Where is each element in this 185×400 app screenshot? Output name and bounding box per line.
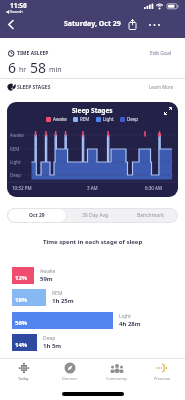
button[interactable]: Today — [0, 362, 47, 400]
staticText: Discover — [62, 376, 78, 381]
button[interactable]: 30 Day Avg — [67, 208, 123, 223]
staticText: 56% — [15, 319, 28, 327]
button[interactable]: 14% — [12, 334, 37, 351]
staticText: Deep — [127, 116, 139, 122]
staticText: 59m — [40, 275, 53, 283]
button[interactable]: Learn More — [149, 84, 174, 90]
button[interactable]: 12% — [12, 267, 34, 284]
staticText: 11:56 — [10, 1, 27, 10]
staticText: Light — [10, 159, 21, 165]
staticText: min — [49, 65, 62, 75]
staticText: 6 — [8, 58, 17, 77]
staticText: Community — [106, 376, 127, 381]
button[interactable] — [148, 22, 162, 28]
button[interactable]: Community — [93, 362, 139, 400]
staticText: 14% — [15, 341, 28, 349]
staticText: 10:32 PM — [12, 185, 32, 191]
button[interactable]: Edit Goal — [150, 50, 172, 57]
staticText: Today — [18, 376, 29, 381]
staticText: ◀ Search — [6, 9, 23, 14]
button[interactable]: 18% — [12, 289, 46, 306]
staticText: 18% — [15, 296, 28, 304]
staticText: TIME ASLEEP — [17, 50, 49, 57]
button[interactable]: 56% — [12, 312, 113, 329]
button[interactable]: Sleep Stages — [7, 102, 178, 197]
staticText: SLEEP STAGES — [17, 84, 51, 91]
staticText: 30 Day Avg — [82, 212, 109, 219]
staticText: Saturday, Oct 29 — [64, 19, 121, 29]
button[interactable]: Benchmark — [123, 208, 178, 223]
button[interactable] — [8, 20, 14, 29]
staticText: Awake — [40, 268, 56, 275]
staticText: 1h 5m — [43, 342, 62, 350]
staticText: Sleep Stages — [72, 106, 113, 115]
staticText: REM — [80, 116, 90, 122]
staticText: 6:30 AM — [145, 185, 163, 191]
staticText: REM — [10, 146, 20, 152]
staticText: Deep — [43, 335, 56, 342]
button[interactable] — [128, 19, 137, 30]
button[interactable]: Discover — [47, 362, 93, 400]
staticText: Premium — [154, 376, 171, 381]
staticText: 4h 28m — [119, 320, 141, 328]
staticText: 1h 25m — [52, 297, 74, 305]
button[interactable]: Premium — [139, 362, 185, 400]
staticText: Awake — [10, 132, 24, 138]
button[interactable]: Oct 29 — [7, 208, 67, 223]
staticText: Awake — [53, 116, 67, 122]
staticText: Light — [119, 313, 131, 320]
staticText: REM — [52, 290, 63, 297]
staticText: Light — [103, 116, 114, 122]
staticText: Deep — [10, 172, 22, 178]
staticText: 3 AM — [87, 185, 98, 191]
staticText: Time spent in each stage of sleep — [43, 238, 143, 246]
staticText: 58 — [30, 58, 47, 77]
staticText: hr — [19, 65, 27, 75]
staticText: 12% — [15, 274, 28, 282]
staticText: Oct 29 — [29, 212, 45, 219]
staticText: Benchmark — [137, 212, 164, 219]
